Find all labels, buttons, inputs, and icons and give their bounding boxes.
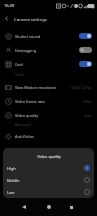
button[interactable]: Low: [3, 186, 94, 198]
staticText: Grid: [15, 62, 23, 67]
staticText: 16:39: [4, 3, 15, 8]
button[interactable]: Anti-flicker: [0, 129, 97, 143]
staticText: Video: [15, 72, 24, 77]
staticText: 60fps: [83, 99, 92, 104]
button[interactable]: High: [3, 162, 94, 174]
button[interactable]: Video quality: [0, 108, 97, 122]
staticText: 1080p 120fps: [70, 85, 92, 90]
staticText: High: [84, 113, 92, 118]
staticText: Low: [7, 190, 15, 195]
staticText: Shutter sound: [15, 34, 41, 39]
staticText: Video quality: [15, 113, 39, 118]
staticText: Geotagging: [15, 48, 37, 53]
staticText: Middle: [7, 178, 20, 183]
button[interactable]: Slow Motion resolution: [0, 80, 97, 94]
button[interactable]: Grid: [0, 57, 97, 71]
button[interactable]: Middle: [3, 174, 94, 186]
button[interactable]: Back: [16, 199, 32, 215]
staticText: Video frame rate: [15, 99, 45, 104]
button[interactable]: Back: [0, 12, 13, 25]
staticText: Camera settings: [14, 16, 47, 22]
button[interactable]: Home: [41, 199, 57, 215]
button[interactable]: Geotagging: [0, 43, 97, 57]
button[interactable]: Video frame rate: [0, 94, 97, 108]
staticText: Advanced: [15, 122, 31, 127]
staticText: Anti-flicker: [15, 134, 35, 139]
staticText: Slow Motion resolution: [15, 85, 57, 90]
button[interactable]: Shutter sound: [0, 29, 97, 43]
staticText: Video quality: [37, 154, 61, 159]
button[interactable]: Recents: [63, 199, 79, 215]
staticText: High: [7, 166, 16, 171]
